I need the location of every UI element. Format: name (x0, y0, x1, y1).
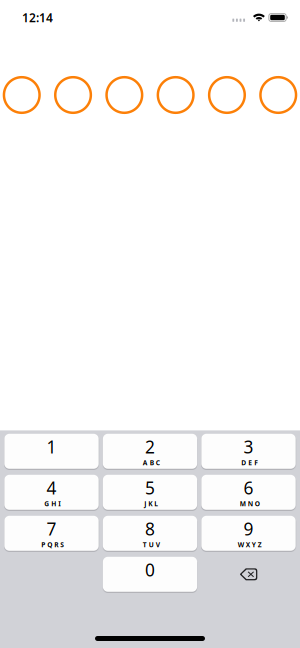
staticText: JKL (144, 499, 158, 508)
button[interactable]: 5 (103, 475, 197, 510)
staticText: 6 (243, 476, 253, 499)
staticText: 7 (46, 517, 56, 540)
staticText: MNO (240, 499, 260, 508)
button[interactable]: Delete (201, 557, 296, 592)
staticText: GHI (44, 499, 61, 508)
staticText: 2 (145, 435, 155, 458)
staticText: TUV (143, 540, 160, 549)
button[interactable]: 0 (103, 557, 197, 592)
staticText: PQRS (41, 540, 64, 549)
staticText: 5 (145, 476, 155, 499)
staticText: 8 (145, 517, 155, 540)
staticText: 0 (145, 558, 155, 581)
button[interactable]: 2 (103, 434, 197, 469)
staticText: 12:14 (22, 9, 53, 25)
staticText: 9 (243, 517, 253, 540)
button[interactable]: 4 (4, 475, 99, 510)
staticText: WXYZ (238, 540, 262, 549)
staticText: 4 (46, 476, 56, 499)
button[interactable]: 9 (201, 516, 296, 551)
staticText: 1 (46, 435, 56, 458)
button[interactable]: 1 (4, 434, 99, 469)
button[interactable]: 7 (4, 516, 99, 551)
staticText: DEF (241, 458, 258, 467)
button[interactable]: 8 (103, 516, 197, 551)
staticText: ABC (143, 458, 160, 467)
button[interactable]: 3 (201, 434, 296, 469)
staticText: 3 (243, 435, 253, 458)
button[interactable]: 6 (201, 475, 296, 510)
